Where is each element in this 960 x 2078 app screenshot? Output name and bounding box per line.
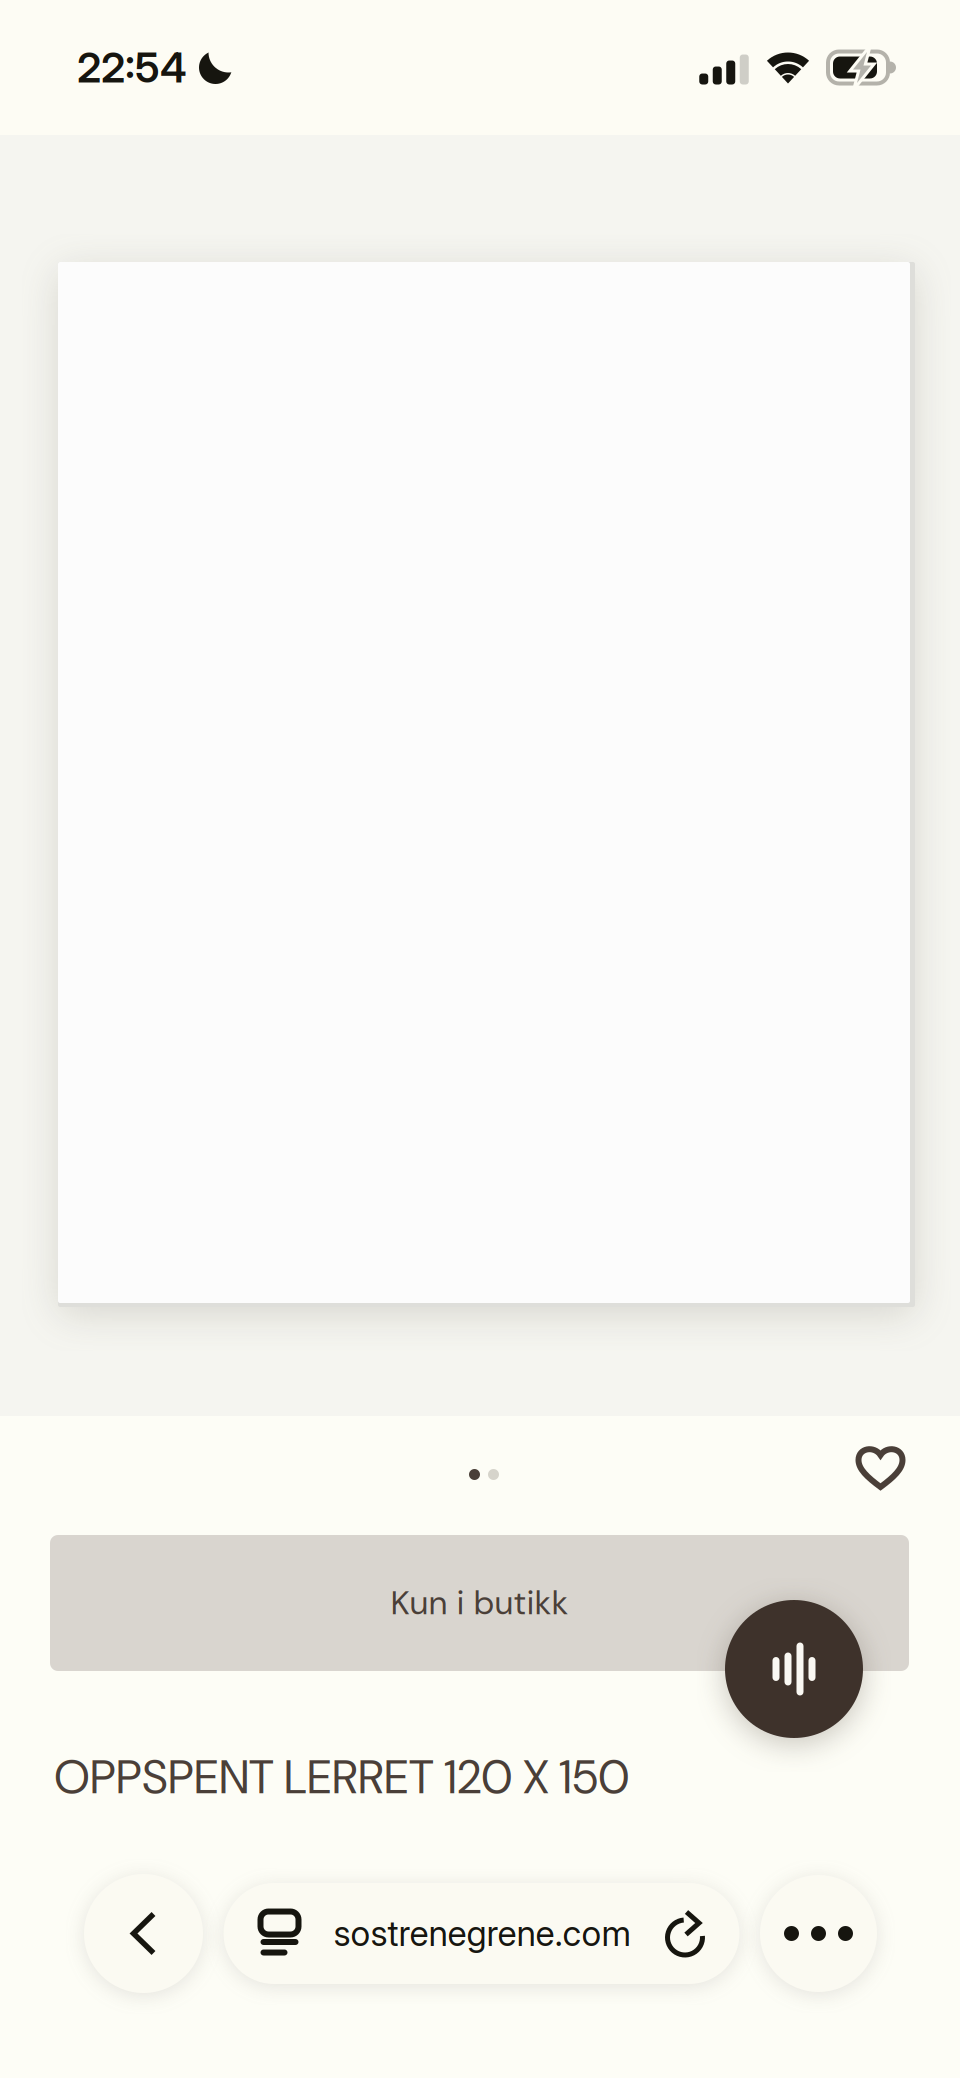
staticText: sostrenegrene.com: [333, 1912, 631, 1954]
button[interactable]: Add to favourites: [841, 1429, 920, 1504]
button[interactable]: Back: [84, 1874, 203, 1993]
button[interactable]: Play product audio: [725, 1600, 863, 1738]
button[interactable]: Kun i butikk: [50, 1535, 909, 1671]
staticText: Kun i butikk: [390, 1581, 568, 1625]
button[interactable]: sostrenegrene.com: [223, 1883, 739, 1984]
staticText: 22:54: [77, 42, 187, 92]
button[interactable]: More options: [760, 1875, 877, 1992]
staticText: OPPSPENT LERRET 120 X 150: [54, 1747, 630, 1808]
